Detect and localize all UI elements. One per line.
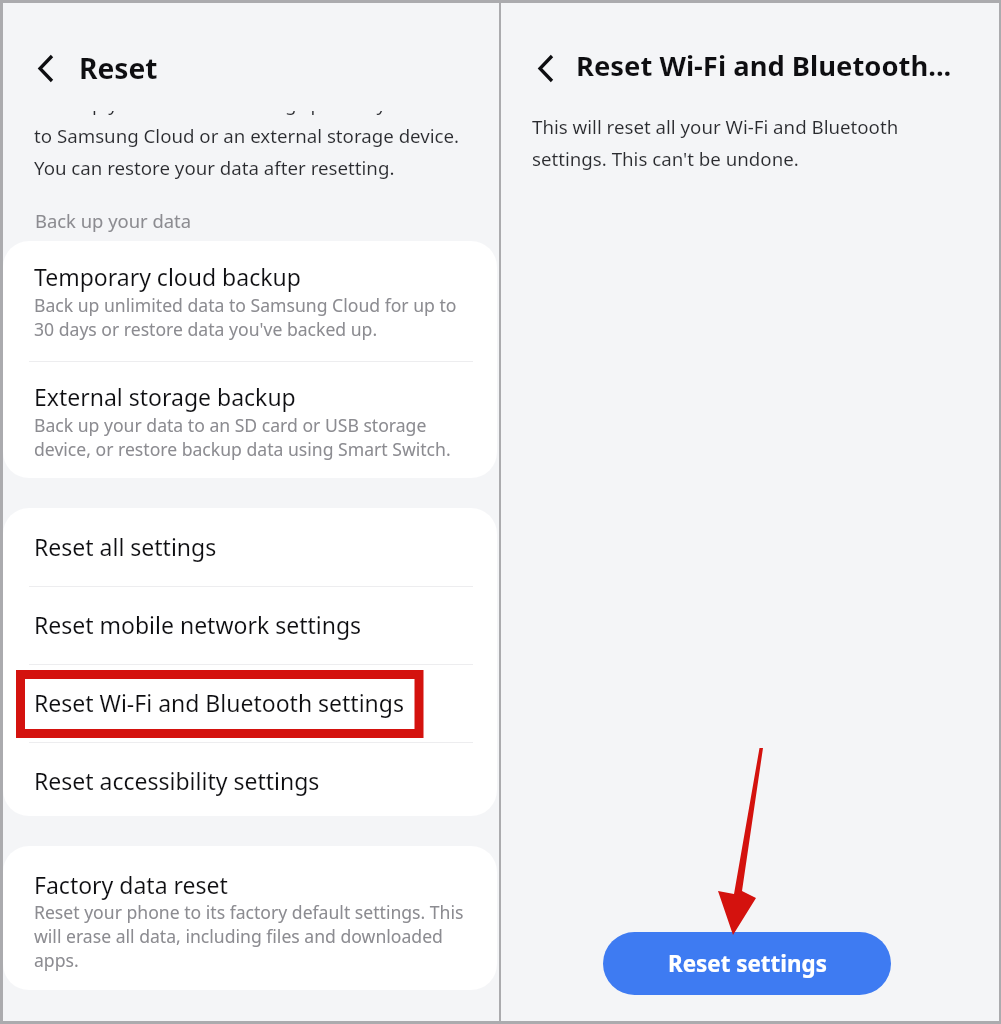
button[interactable]: Reset all settings — [3, 508, 497, 585]
staticText: Temporary cloud backup — [34, 261, 301, 292]
button[interactable]: External storage backup — [3, 361, 497, 478]
staticText: This will reset all your Wi-Fi and Bluet… — [532, 114, 899, 171]
staticText: Reset Wi-Fi and Bluetooth... — [576, 47, 952, 84]
staticText: External storage backup — [34, 381, 296, 412]
button[interactable]: Temporary cloud backup — [3, 241, 497, 360]
staticText: Reset Wi-Fi and Bluetooth settings — [34, 687, 404, 718]
staticText: Back up your data to an SD card or USB s… — [34, 413, 451, 461]
button[interactable]: Navigate up — [519, 45, 564, 90]
staticText: Reset settings — [668, 948, 827, 979]
button[interactable]: Factory data reset — [3, 846, 497, 990]
button[interactable]: Reset settings — [603, 932, 891, 995]
button[interactable]: Reset accessibility settings — [3, 742, 497, 816]
staticText: Factory data reset — [34, 869, 228, 900]
staticText: Reset all settings — [34, 531, 217, 562]
staticText: Back up your data — [35, 208, 191, 233]
staticText: Back up your data and settings privately… — [34, 111, 460, 180]
staticText: Reset your phone to its factory default … — [34, 900, 464, 972]
button[interactable]: Navigate up — [22, 45, 67, 90]
button[interactable]: Reset mobile network settings — [3, 586, 497, 663]
staticText: Reset accessibility settings — [34, 765, 320, 796]
staticText: Reset mobile network settings — [34, 609, 362, 640]
staticText: Reset — [79, 49, 158, 87]
button[interactable]: Reset Wi-Fi and Bluetooth settings — [3, 664, 497, 741]
staticText: Back up unlimited data to Samsung Cloud … — [34, 293, 457, 341]
